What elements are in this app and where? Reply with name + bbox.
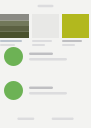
button[interactable] <box>32 14 59 46</box>
button[interactable] <box>0 14 29 46</box>
button[interactable] <box>62 14 89 46</box>
button[interactable] <box>0 81 91 100</box>
button[interactable] <box>0 47 91 66</box>
